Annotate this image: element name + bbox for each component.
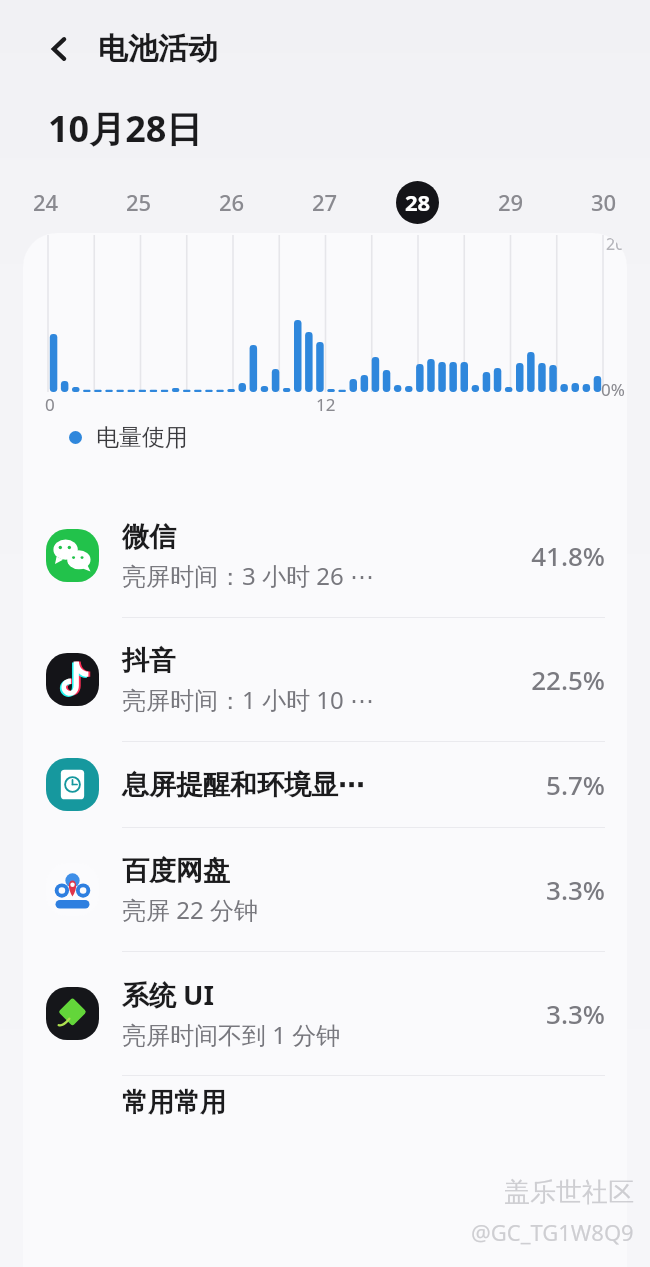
- button[interactable]: 抖音: [23, 618, 627, 741]
- staticText: 28: [405, 187, 431, 217]
- staticText: 电量使用: [96, 423, 188, 452]
- staticText: 22.5%: [531, 662, 605, 697]
- staticText: 百度网盘: [122, 854, 230, 888]
- staticText: @GC_TG1W8Q9: [471, 1217, 634, 1247]
- staticText: 30: [591, 187, 617, 217]
- staticText: 亮屏时间：3 小时 26 ⋯: [122, 559, 374, 592]
- staticText: 常用常用: [122, 1086, 226, 1119]
- staticText: 微信: [122, 520, 176, 554]
- staticText: 抖音: [122, 644, 176, 678]
- staticText: 41.8%: [531, 538, 605, 573]
- staticText: 25: [126, 187, 152, 217]
- button[interactable]: 26: [185, 177, 278, 227]
- staticText: 0: [45, 393, 55, 413]
- staticText: 亮屏 22 分钟: [122, 893, 258, 926]
- button[interactable]: 30: [557, 177, 650, 227]
- button[interactable]: 28: [371, 177, 464, 227]
- button[interactable]: 系统 UI: [23, 952, 627, 1075]
- staticText: 电池活动: [98, 30, 218, 68]
- staticText: 20: [606, 233, 625, 255]
- button[interactable]: 微信: [23, 494, 627, 617]
- button[interactable]: 常用常用: [23, 1082, 627, 1122]
- button[interactable]: 百度网盘: [23, 828, 627, 951]
- button[interactable]: 息屏提醒和环境显⋯: [23, 742, 627, 827]
- button[interactable]: Back: [36, 25, 84, 73]
- button[interactable]: 29: [464, 177, 557, 227]
- staticText: 亮屏时间不到 1 分钟: [122, 1018, 341, 1051]
- staticText: 26: [219, 187, 245, 217]
- staticText: 0%: [601, 378, 625, 401]
- staticText: 5.7%: [546, 767, 605, 802]
- button[interactable]: 25: [92, 177, 185, 227]
- staticText: 12: [316, 393, 336, 413]
- staticText: 盖乐世社区: [504, 1176, 634, 1209]
- staticText: 息屏提醒和环境显⋯: [122, 768, 365, 802]
- staticText: 24: [33, 187, 59, 217]
- staticText: 亮屏时间：1 小时 10 ⋯: [122, 683, 374, 716]
- staticText: 3.3%: [546, 872, 605, 907]
- button[interactable]: 24: [0, 177, 92, 227]
- staticText: 29: [498, 187, 524, 217]
- button[interactable]: 27: [278, 177, 371, 227]
- staticText: 10月28日: [48, 104, 203, 153]
- staticText: 3.3%: [546, 996, 605, 1031]
- staticText: 27: [312, 187, 338, 217]
- staticText: 系统 UI: [122, 976, 214, 1013]
